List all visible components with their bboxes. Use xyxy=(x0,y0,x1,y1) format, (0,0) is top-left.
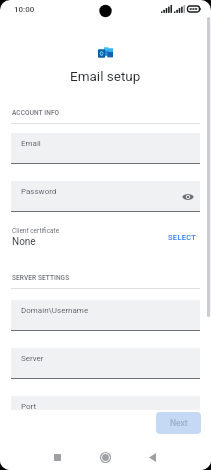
button[interactable]: Home xyxy=(94,446,116,468)
staticText: Email setup xyxy=(70,68,141,84)
staticText: Domain\Username xyxy=(21,306,89,315)
staticText: Email xyxy=(21,139,41,148)
staticText: SELECT xyxy=(168,233,197,242)
staticText: Server xyxy=(21,354,44,363)
staticText: Port xyxy=(21,402,37,410)
staticText: SERVER SETTINGS xyxy=(12,274,70,282)
staticText: ACCOUNT INFO xyxy=(12,109,60,117)
staticText: Next xyxy=(170,418,188,428)
button[interactable]: Domain\Username xyxy=(11,300,200,331)
staticText: 10:00 xyxy=(14,5,35,14)
button[interactable]: Next xyxy=(156,412,201,434)
button[interactable]: Port xyxy=(11,396,200,410)
button[interactable]: Password xyxy=(11,181,200,212)
button[interactable]: Recent apps xyxy=(46,446,68,468)
button[interactable]: Server xyxy=(11,348,200,379)
button[interactable]: Back xyxy=(141,446,163,468)
staticText: Password xyxy=(21,187,57,196)
button[interactable]: Client certificate xyxy=(12,221,197,253)
button[interactable]: Email xyxy=(11,133,200,164)
staticText: Client certificate xyxy=(12,227,60,235)
staticText: None xyxy=(12,236,36,248)
other: Show password xyxy=(182,193,194,201)
